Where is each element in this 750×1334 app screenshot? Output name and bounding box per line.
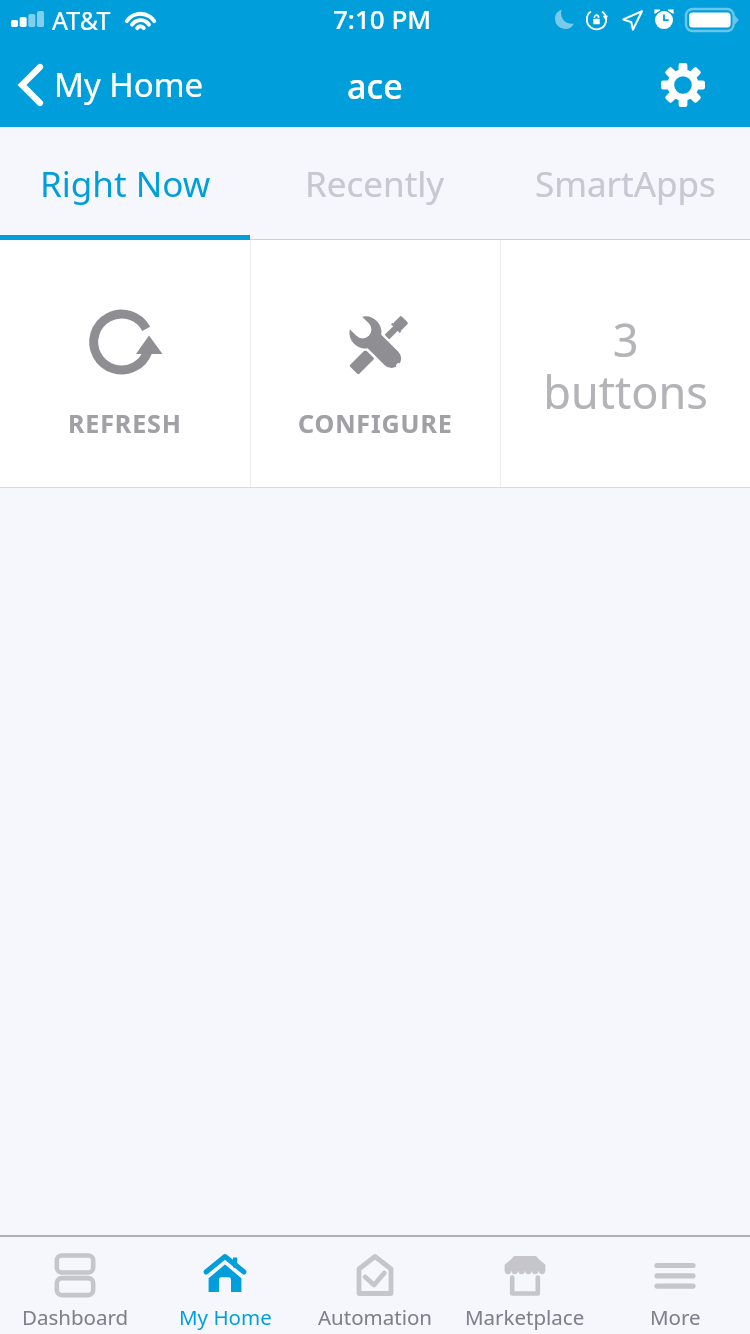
staticText: Dashboard — [22, 1303, 129, 1331]
button[interactable]: My Home — [0, 56, 216, 113]
button[interactable]: REFRESH — [0, 240, 250, 487]
staticText: 7:10 PM — [333, 1, 432, 36]
button[interactable]: Marketplace — [450, 1237, 600, 1334]
staticText: ace — [347, 63, 403, 109]
staticText: My Home — [179, 1303, 272, 1331]
button[interactable]: My Home — [150, 1237, 300, 1334]
button[interactable]: 3 buttons — [501, 240, 750, 487]
staticText: Marketplace — [465, 1303, 585, 1331]
staticText: CONFIGURE — [298, 406, 453, 440]
staticText: Recently — [305, 160, 445, 208]
button[interactable]: More — [600, 1237, 750, 1334]
staticText: SmartApps — [535, 160, 716, 208]
button[interactable]: Right Now — [0, 127, 250, 240]
button[interactable]: Dashboard — [0, 1237, 150, 1334]
button[interactable]: Recently — [250, 127, 500, 240]
button[interactable]: Settings — [641, 42, 725, 127]
staticText: 3 buttons — [543, 309, 708, 422]
staticText: Right Now — [40, 160, 211, 208]
button[interactable]: CONFIGURE — [251, 240, 500, 487]
staticText: Automation — [318, 1303, 433, 1331]
button[interactable]: Automation — [300, 1237, 450, 1334]
staticText: My Home — [54, 62, 204, 107]
staticText: More — [650, 1303, 701, 1331]
button[interactable]: SmartApps — [500, 127, 750, 240]
staticText: REFRESH — [68, 406, 182, 440]
staticText: AT&T — [52, 3, 111, 37]
